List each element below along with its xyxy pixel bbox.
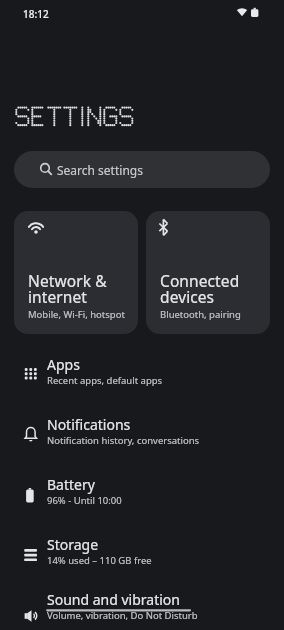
button[interactable]: Apps <box>0 341 284 401</box>
staticText: Connected devices <box>160 270 240 307</box>
button[interactable]: Notifications <box>0 401 284 461</box>
staticText: Sound and vibration <box>47 590 180 609</box>
staticText: Apps <box>47 355 80 374</box>
button[interactable]: Search settings <box>14 151 270 188</box>
staticText: Storage <box>47 535 99 554</box>
button[interactable]: Storage <box>0 521 284 581</box>
staticText: Network & internet <box>28 270 107 307</box>
staticText: 96% - Until 10:00 <box>47 494 122 507</box>
staticText: Bluetooth, pairing <box>160 308 241 321</box>
staticText: Mobile, Wi-Fi, hotspot <box>28 308 125 321</box>
staticText: Notification history, conversations <box>47 434 200 447</box>
staticText: 14% used – 110 GB free <box>47 554 152 567</box>
staticText: Notifications <box>47 415 131 434</box>
button[interactable]: Sound and vibration <box>0 581 284 630</box>
staticText: Search settings <box>57 162 143 178</box>
staticText: 18:12 <box>23 7 49 21</box>
staticText: Battery <box>47 475 95 494</box>
staticText: Recent apps, default apps <box>47 374 163 387</box>
staticText: Volume, vibration, Do Not Disturb <box>47 609 198 622</box>
button[interactable]: Battery <box>0 461 284 521</box>
button[interactable]: Connected devices <box>146 211 270 334</box>
button[interactable]: Network & internet <box>14 211 138 334</box>
